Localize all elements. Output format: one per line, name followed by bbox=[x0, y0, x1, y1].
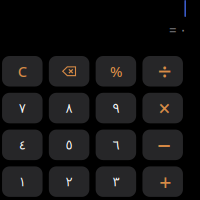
staticText: ٩ bbox=[112, 100, 119, 116]
staticText: ٣ bbox=[112, 174, 119, 189]
staticText: C bbox=[18, 61, 27, 81]
button[interactable]: ٨ bbox=[49, 93, 89, 123]
button[interactable]: ١ bbox=[2, 166, 42, 197]
button[interactable]: + bbox=[142, 166, 183, 197]
staticText: ٠ bbox=[179, 22, 186, 37]
staticText: ٦ bbox=[112, 137, 119, 152]
staticText: × bbox=[158, 94, 170, 122]
button[interactable]: ٤ bbox=[2, 130, 42, 160]
button[interactable]: ٧ bbox=[2, 93, 42, 123]
staticText: ÷ bbox=[158, 55, 172, 87]
staticText: − bbox=[157, 129, 171, 161]
staticText: ٥ bbox=[66, 137, 73, 152]
staticText: ٢ bbox=[66, 174, 73, 189]
button[interactable]: % bbox=[96, 56, 136, 86]
button[interactable]: ٥ bbox=[49, 130, 89, 160]
staticText: ١ bbox=[19, 174, 26, 189]
button[interactable]: ٢ bbox=[49, 166, 89, 197]
staticText: ٤ bbox=[19, 137, 26, 152]
button[interactable]: × bbox=[142, 93, 183, 123]
button[interactable]: ÷ bbox=[142, 56, 183, 86]
staticText: + bbox=[159, 167, 171, 196]
button[interactable]: C bbox=[2, 56, 42, 86]
button[interactable] bbox=[49, 56, 89, 86]
staticText: ٧ bbox=[19, 100, 26, 116]
staticText: = bbox=[169, 21, 177, 39]
staticText: ٨ bbox=[66, 100, 73, 116]
button[interactable]: ٣ bbox=[96, 166, 136, 197]
button[interactable]: ٩ bbox=[96, 93, 136, 123]
button[interactable]: − bbox=[142, 130, 183, 160]
staticText: % bbox=[110, 61, 122, 81]
button[interactable]: ٦ bbox=[96, 130, 136, 160]
